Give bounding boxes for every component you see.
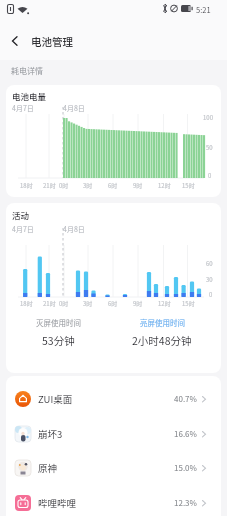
staticText: 9时 xyxy=(133,181,143,190)
staticText: 4月8日 xyxy=(63,103,85,113)
staticText: 15.0% xyxy=(174,462,197,474)
staticText: 6时 xyxy=(108,181,118,190)
staticText: 电池电量 xyxy=(12,90,47,102)
staticText: 21时 xyxy=(43,299,56,308)
staticText: 18时 xyxy=(20,181,33,190)
staticText: 耗电详情 xyxy=(11,65,43,77)
staticText: 3时 xyxy=(83,299,93,308)
staticText: ZUI桌面 xyxy=(38,392,73,406)
staticText: 2小时48分钟 xyxy=(132,333,192,348)
staticText: 100 xyxy=(203,113,213,122)
staticText: 0时 xyxy=(59,181,69,190)
staticText: 21时 xyxy=(43,181,56,190)
staticText: 12时 xyxy=(158,181,171,190)
staticText: 30 xyxy=(206,275,213,284)
staticText: 5:21 xyxy=(196,4,211,15)
staticText: 哔哩哔哩 xyxy=(38,496,77,510)
staticText: 12.3% xyxy=(174,497,197,509)
staticText: 0 xyxy=(208,171,212,180)
staticText: 灭屏使用时间 xyxy=(36,317,81,328)
staticText: 6时 xyxy=(108,299,118,308)
staticText: 0 xyxy=(209,290,213,299)
staticText: 4月7日 xyxy=(12,224,34,234)
staticText: 40.7% xyxy=(174,393,197,405)
staticText: 原神 xyxy=(38,461,58,475)
staticText: 亮屏使用时间 xyxy=(140,317,185,328)
staticText: 3时 xyxy=(83,181,93,190)
staticText: 4月8日 xyxy=(63,224,85,234)
staticText: 4月7日 xyxy=(12,103,34,113)
staticText: 崩坏3 xyxy=(38,427,63,441)
staticText: 60 xyxy=(206,259,213,268)
staticText: 12时 xyxy=(158,299,171,308)
staticText: 电池管理 xyxy=(31,34,73,49)
staticText: 0时 xyxy=(59,299,69,308)
staticText: 15时 xyxy=(182,181,195,190)
staticText: 53分钟 xyxy=(42,333,75,348)
staticText: 活动 xyxy=(12,209,30,221)
staticText: 9时 xyxy=(133,299,143,308)
staticText: 16.6% xyxy=(174,428,197,440)
staticText: 50 xyxy=(206,143,213,152)
staticText: 15时 xyxy=(182,299,195,308)
staticText: 18时 xyxy=(20,299,33,308)
